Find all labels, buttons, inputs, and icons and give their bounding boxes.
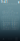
staticText: Cupertino	[2, 2, 17, 6]
staticText: Fri	[2, 27, 5, 31]
staticText: 58° 75°	[11, 21, 17, 29]
staticText: 9:41	[1, 0, 8, 4]
staticText: Wed	[2, 23, 8, 27]
button[interactable]: Thu	[1, 26, 18, 28]
staticText: Mostly Clear	[2, 11, 18, 15]
staticText: 72°	[4, 17, 6, 27]
staticText: 72°	[2, 17, 4, 27]
button[interactable]: Fri	[1, 28, 18, 30]
staticText: 72°	[11, 18, 14, 26]
staticText: 72°	[8, 18, 11, 26]
staticText: 58° 75°	[5, 27, 17, 31]
staticText: ▮	[18, 0, 19, 3]
staticText: HOURLY FORECAST	[2, 10, 14, 17]
staticText: 72°	[6, 17, 8, 27]
staticText: 72°	[14, 18, 17, 26]
button[interactable]: HOURLY FORECAST	[1, 16, 18, 21]
staticText: 58° 75°	[11, 23, 17, 31]
button[interactable]: Wed	[1, 24, 18, 26]
staticText: Thu	[2, 25, 7, 29]
staticText: Today	[2, 21, 9, 25]
button[interactable]: Today	[1, 22, 18, 24]
staticText: 58° 75°	[11, 19, 17, 27]
button[interactable]: Weather map	[2, 37, 5, 40]
